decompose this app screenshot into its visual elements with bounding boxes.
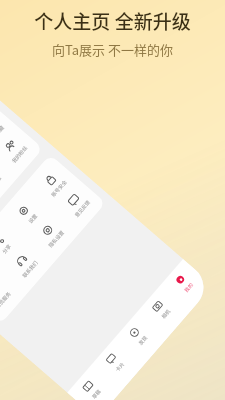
staticText: 发现 — [136, 333, 149, 346]
staticText: 账号安全 — [49, 177, 68, 198]
staticText: 我的粉丝 — [10, 143, 29, 164]
staticText: 我的收藏 — [0, 123, 6, 144]
button[interactable]: 相机 — [142, 289, 180, 329]
button[interactable]: 会员服务 — [0, 269, 23, 320]
button[interactable]: 草稿 — [72, 369, 110, 400]
button[interactable]: 分享 — [0, 219, 26, 269]
button[interactable]: 隐私设置 — [26, 209, 75, 259]
button[interactable]: 设置 — [2, 188, 52, 239]
staticText: 我的 — [182, 280, 195, 293]
staticText: 意见反馈 — [73, 198, 92, 218]
button[interactable]: 发现 — [119, 316, 157, 355]
staticText: 设置 — [26, 211, 39, 224]
staticText: 隐私设置 — [47, 228, 66, 248]
button[interactable]: 卡片 — [95, 342, 134, 382]
button[interactable]: 我的动态 — [0, 154, 12, 205]
staticText: 卡片 — [114, 360, 126, 373]
button[interactable]: 意见反馈 — [52, 178, 101, 229]
staticText: 我的动态 — [0, 174, 3, 194]
staticText: 联系我们 — [20, 258, 39, 279]
button[interactable]: 联系我们 — [0, 239, 49, 289]
staticText: 个人主页 全新升级 — [34, 7, 191, 35]
staticText: 会员服务 — [0, 289, 12, 310]
button[interactable]: 账号安全 — [28, 158, 78, 209]
staticText: 向Ta展示 不一样的你 — [52, 40, 173, 59]
staticText: 分享 — [0, 242, 13, 255]
button[interactable]: 我的 — [165, 263, 203, 302]
staticText: 相机 — [159, 307, 172, 320]
button[interactable]: 我的粉丝 — [0, 124, 39, 175]
staticText: 草稿 — [90, 387, 102, 400]
button[interactable]: 我的收藏 — [0, 104, 15, 154]
